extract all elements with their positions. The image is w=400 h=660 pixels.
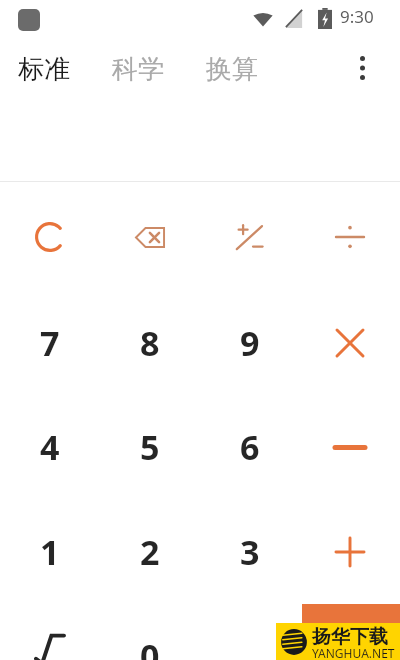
button[interactable]: 7 [0, 291, 100, 395]
staticText: 9 [240, 320, 260, 366]
button[interactable]: 科学 [112, 46, 198, 92]
staticText: 6 [240, 424, 260, 470]
staticText: 1 [40, 529, 60, 575]
button[interactable]: 8 [100, 291, 200, 395]
button[interactable]: Minus [300, 395, 400, 499]
staticText: 科学 [112, 53, 164, 86]
staticText: 5 [140, 424, 160, 470]
button[interactable]: More options [338, 44, 386, 92]
button[interactable]: Divide [300, 185, 400, 289]
button[interactable]: 5 [100, 395, 200, 499]
staticText: 扬华下载 [312, 625, 388, 649]
button[interactable]: 4 [0, 395, 100, 499]
button[interactable]: Plus minus [200, 185, 300, 289]
button[interactable]: Multiply [300, 291, 400, 395]
staticText: YANGHUA.NET [312, 645, 395, 660]
button[interactable]: Backspace [100, 185, 200, 289]
staticText: 3 [240, 529, 260, 575]
staticText: 换算 [206, 53, 258, 86]
button[interactable]: 2 [100, 500, 200, 604]
button[interactable]: 3 [200, 500, 300, 604]
button[interactable]: 6 [200, 395, 300, 499]
button[interactable]: Square root [0, 604, 100, 660]
button[interactable]: 0 [100, 604, 200, 660]
staticText: 4 [40, 424, 60, 470]
button[interactable]: 9 [200, 291, 300, 395]
button[interactable]: 1 [0, 500, 100, 604]
staticText: 0 [140, 633, 160, 660]
staticText: 2 [140, 529, 160, 575]
staticText: 标准 [18, 53, 70, 86]
staticText: 9:30 [340, 5, 374, 28]
button[interactable]: Clear [0, 185, 100, 289]
button[interactable]: 标准 [18, 46, 104, 92]
staticText: 7 [40, 320, 60, 366]
staticText: 8 [140, 320, 160, 366]
button[interactable]: 换算 [206, 46, 292, 92]
button[interactable]: Plus [300, 500, 400, 604]
